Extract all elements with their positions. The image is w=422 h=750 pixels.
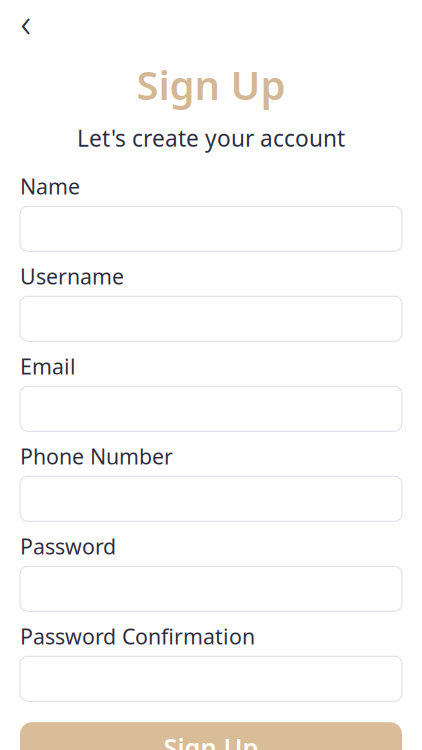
button[interactable]: Username text field [20, 296, 402, 341]
staticText: Email [20, 352, 76, 380]
staticText: Name [20, 172, 80, 200]
button[interactable]: Back [4, 4, 48, 40]
button[interactable]: Email text field [20, 386, 402, 431]
staticText: ‹ [20, 0, 31, 48]
button[interactable]: Password text field [20, 566, 402, 611]
staticText: Password [20, 532, 116, 560]
button[interactable]: Password Confirmation text field [20, 656, 402, 701]
staticText: Sign Up [136, 58, 285, 111]
button[interactable]: Phone Number text field [20, 476, 402, 521]
button[interactable]: Name text field [20, 206, 402, 251]
button[interactable]: Sign Up [20, 722, 402, 750]
staticText: Username [20, 262, 124, 290]
staticText: Phone Number [20, 442, 173, 470]
staticText: Sign Up [163, 730, 258, 750]
staticText: Password Confirmation [20, 622, 255, 650]
staticText: Let's create your account [77, 123, 345, 153]
